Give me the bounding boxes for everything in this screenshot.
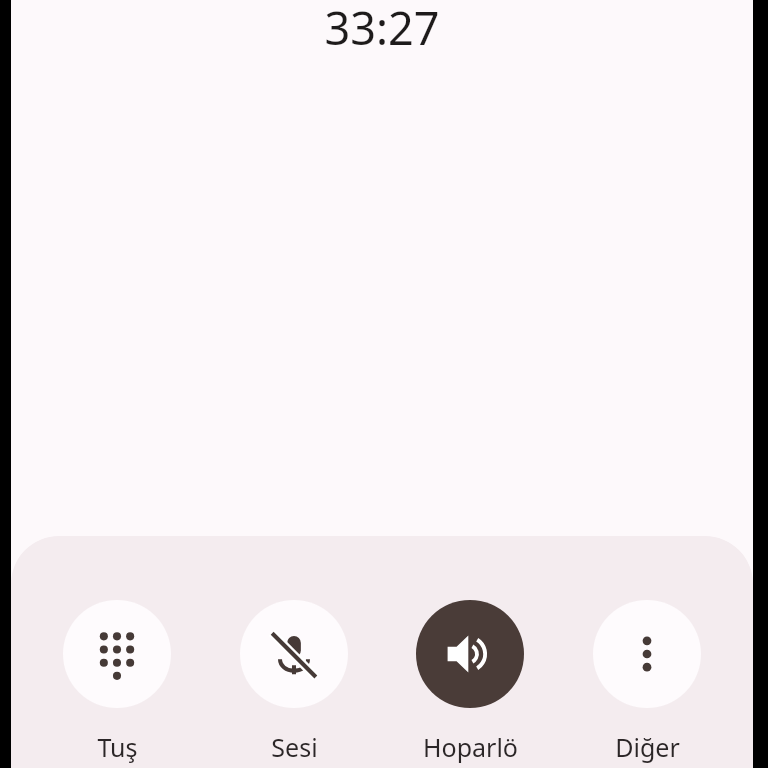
staticText: Sesi <box>271 730 318 764</box>
button[interactable]: More options <box>577 600 717 764</box>
staticText: 33:27 <box>324 0 440 58</box>
button[interactable]: Keypad <box>47 600 187 764</box>
staticText: Hoparlö <box>423 730 518 764</box>
button[interactable]: Mute <box>224 600 364 764</box>
staticText: Tuş <box>97 730 138 764</box>
staticText: Diğer <box>615 730 680 764</box>
button[interactable]: Speaker <box>400 600 540 764</box>
